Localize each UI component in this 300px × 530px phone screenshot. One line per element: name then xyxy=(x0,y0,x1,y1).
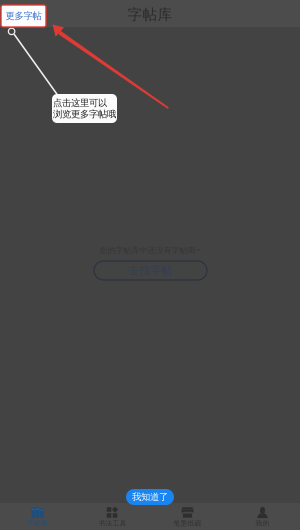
button[interactable]: 笔墨纸砚 xyxy=(150,505,225,529)
staticText: 点击这里可以 浏览更多字帖哦 xyxy=(53,97,116,120)
staticText: 我的 xyxy=(255,519,269,527)
button[interactable]: 去找字帖 xyxy=(94,261,207,280)
button[interactable]: 我的 xyxy=(225,505,300,529)
staticText: 更多字帖 xyxy=(5,10,41,22)
staticText: 我知道了 xyxy=(132,491,168,503)
staticText: 字帖库 xyxy=(127,5,172,23)
staticText: 书法工具 xyxy=(98,519,126,527)
staticText: 去找字帖 xyxy=(128,264,172,277)
staticText: 笔墨纸砚 xyxy=(173,519,201,527)
button[interactable]: 更多字帖 xyxy=(1,5,46,27)
staticText: 您的字帖库中还没有字帖哦~ xyxy=(99,245,200,255)
button[interactable]: 字帖库 xyxy=(0,505,75,529)
button[interactable]: 我知道了 xyxy=(126,489,174,505)
staticText: 字帖库 xyxy=(27,519,48,527)
button[interactable]: 书法工具 xyxy=(75,505,150,529)
